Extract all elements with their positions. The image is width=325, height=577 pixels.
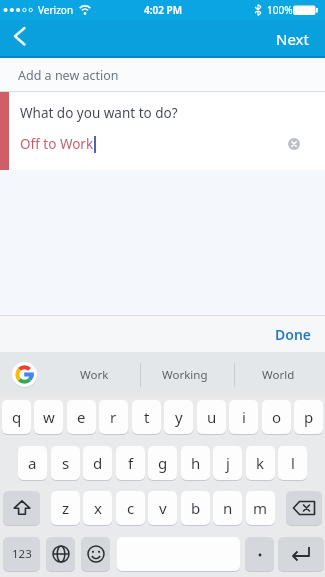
button[interactable]: s <box>51 446 80 480</box>
staticText: a <box>28 453 37 473</box>
staticText: Working <box>162 367 208 383</box>
staticText: Work <box>80 367 109 383</box>
button[interactable]: q <box>2 400 31 434</box>
button[interactable]: m <box>246 491 275 525</box>
button[interactable]: a <box>18 446 47 480</box>
staticText: w <box>43 407 55 427</box>
button[interactable]: c <box>116 491 145 525</box>
button[interactable]: u <box>197 400 226 434</box>
staticText: Done <box>275 325 312 344</box>
button[interactable]: What do you want to do? <box>0 92 325 170</box>
button[interactable]: p <box>294 400 323 434</box>
staticText: What do you want to do? <box>20 104 178 122</box>
button[interactable]: f <box>116 446 145 480</box>
button[interactable] <box>46 537 75 571</box>
staticText: d <box>93 453 103 473</box>
button[interactable]: t <box>132 400 161 434</box>
button[interactable] <box>3 491 40 525</box>
button[interactable]: i <box>229 400 258 434</box>
staticText: z <box>62 498 70 518</box>
button[interactable]: o <box>262 400 291 434</box>
staticText: Verizon <box>38 3 74 17</box>
button[interactable]: n <box>213 491 242 525</box>
button[interactable]: World <box>244 352 312 397</box>
staticText: 123 <box>12 546 32 562</box>
staticText: m <box>253 498 268 518</box>
staticText: t <box>144 407 150 427</box>
button[interactable]: b <box>181 491 210 525</box>
staticText: b <box>191 498 201 518</box>
button[interactable] <box>286 491 322 525</box>
button[interactable] <box>245 537 274 571</box>
button[interactable]: Done <box>275 325 312 344</box>
button[interactable]: w <box>34 400 63 434</box>
staticText: f <box>128 453 134 473</box>
staticText: n <box>223 498 233 518</box>
staticText: v <box>159 498 167 518</box>
button[interactable]: Work <box>60 352 128 397</box>
button[interactable]: k <box>246 446 275 480</box>
button[interactable]: y <box>164 400 193 434</box>
staticText: r <box>110 407 117 427</box>
staticText: x <box>94 498 102 518</box>
button[interactable]: r <box>99 400 128 434</box>
staticText: 4:02 PM <box>144 3 182 17</box>
staticText: y <box>175 407 183 427</box>
button[interactable]: h <box>181 446 210 480</box>
staticText: c <box>127 498 135 518</box>
staticText: h <box>191 453 201 473</box>
button[interactable]: j <box>213 446 242 480</box>
button[interactable] <box>9 359 40 390</box>
button[interactable] <box>278 537 324 571</box>
staticText: j <box>226 453 230 473</box>
button[interactable]: z <box>51 491 80 525</box>
staticText: 100% <box>267 3 293 17</box>
staticText: World <box>262 367 295 383</box>
staticText: i <box>242 407 246 427</box>
staticText: s <box>62 453 70 473</box>
staticText: g <box>158 453 168 473</box>
button[interactable] <box>0 20 38 58</box>
staticText: l <box>291 453 295 473</box>
staticText: Off to Work <box>20 135 94 153</box>
button[interactable]: l <box>278 446 307 480</box>
staticText: o <box>272 407 282 427</box>
staticText: p <box>304 407 314 427</box>
button[interactable] <box>81 537 110 571</box>
staticText: Next <box>276 29 309 49</box>
button[interactable]: x <box>83 491 112 525</box>
button[interactable]: 123 <box>3 537 40 571</box>
button[interactable]: d <box>83 446 112 480</box>
staticText: u <box>207 407 217 427</box>
button[interactable]: v <box>148 491 177 525</box>
button[interactable]: Working <box>151 352 219 397</box>
button[interactable]: g <box>148 446 177 480</box>
button[interactable]: e <box>67 400 96 434</box>
staticText: e <box>77 407 86 427</box>
staticText: Add a new action <box>18 67 119 84</box>
button[interactable]: Next <box>0 20 309 58</box>
staticText: q <box>12 407 22 427</box>
button[interactable] <box>287 137 301 151</box>
staticText: k <box>256 453 265 473</box>
